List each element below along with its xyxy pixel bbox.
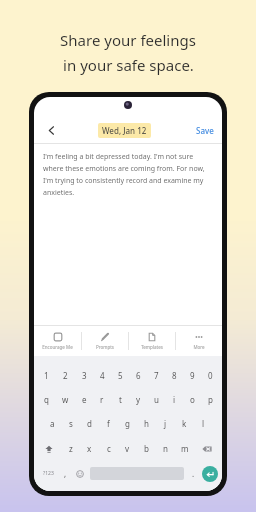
button[interactable]: 1 (37, 363, 56, 387)
button[interactable]: y (129, 387, 147, 411)
staticText: 7 (154, 370, 159, 381)
staticText: a (50, 418, 55, 429)
button[interactable]: p (201, 387, 219, 411)
staticText: r (100, 394, 104, 405)
button[interactable]: . (186, 461, 200, 486)
button[interactable]: 6 (129, 363, 147, 387)
staticText: More (193, 344, 205, 350)
button[interactable]: b (137, 436, 156, 461)
button[interactable]: x (80, 436, 99, 461)
staticText: 2 (63, 370, 68, 381)
staticText: 5 (118, 370, 123, 381)
button[interactable]: More (176, 326, 222, 356)
button[interactable]: Save (188, 121, 222, 140)
staticText: in your safe space. (63, 55, 194, 75)
button[interactable]: 7 (147, 363, 165, 387)
button[interactable]: r (93, 387, 111, 411)
staticText: b (144, 443, 149, 454)
staticText: g (125, 418, 130, 429)
staticText: q (44, 394, 49, 405)
staticText: t (119, 394, 122, 405)
button[interactable]: l (194, 411, 213, 436)
staticText: z (69, 443, 73, 454)
button[interactable]: w (56, 387, 75, 411)
staticText: j (164, 418, 167, 429)
button[interactable]: v (118, 436, 137, 461)
button[interactable]: Encourage Me (34, 326, 81, 356)
button[interactable]: Templates (129, 326, 175, 356)
staticText: 0 (208, 370, 213, 381)
staticText: , (64, 468, 67, 479)
staticText: x (87, 443, 92, 454)
staticText: 3 (82, 370, 87, 381)
button[interactable]: 5 (111, 363, 129, 387)
button[interactable]: f (99, 411, 118, 436)
button[interactable]: 0 (201, 363, 219, 387)
button[interactable]: , (58, 461, 72, 486)
staticText: 6 (136, 370, 141, 381)
staticText: o (190, 394, 195, 405)
button[interactable]: 2 (56, 363, 75, 387)
button[interactable]: z (61, 436, 80, 461)
staticText: 4 (100, 370, 105, 381)
button[interactable]: Backspace (194, 436, 219, 461)
button[interactable]: Enter (202, 466, 218, 482)
button[interactable]: c (99, 436, 118, 461)
button[interactable]: 4 (93, 363, 111, 387)
staticText: m (181, 443, 189, 454)
staticText: 9 (190, 370, 195, 381)
staticText: u (154, 394, 159, 405)
button[interactable]: ?123 (38, 461, 58, 486)
staticText: l (202, 418, 205, 429)
button[interactable]: Back (40, 119, 62, 141)
staticText: d (87, 418, 92, 429)
button[interactable]: t (111, 387, 129, 411)
staticText: p (208, 394, 213, 405)
button[interactable]: h (137, 411, 156, 436)
button[interactable]: k (175, 411, 194, 436)
staticText: Save (196, 125, 214, 136)
staticText: ?123 (43, 470, 54, 477)
button[interactable]: g (118, 411, 137, 436)
staticText: c (107, 443, 111, 454)
staticText: . (192, 468, 195, 479)
button[interactable]: q (37, 387, 56, 411)
staticText: v (125, 443, 130, 454)
button[interactable]: a (43, 411, 61, 436)
button[interactable]: d (80, 411, 99, 436)
staticText: 8 (172, 370, 177, 381)
staticText: n (163, 443, 168, 454)
button[interactable]: Prompts (82, 326, 128, 356)
staticText: 1 (44, 370, 49, 381)
staticText: y (136, 394, 141, 405)
staticText: Prompts (96, 344, 114, 350)
button[interactable]: e (75, 387, 93, 411)
button[interactable]: Shift (37, 436, 61, 461)
button[interactable]: j (156, 411, 175, 436)
button[interactable]: 3 (75, 363, 93, 387)
button[interactable]: m (175, 436, 194, 461)
staticText: h (144, 418, 149, 429)
button[interactable]: 8 (165, 363, 183, 387)
button[interactable]: u (147, 387, 165, 411)
button[interactable]: 9 (183, 363, 201, 387)
staticText: f (107, 418, 110, 429)
button[interactable]: Wed, Jan 12 (98, 123, 151, 138)
staticText: Wed, Jan 12 (102, 125, 147, 136)
button[interactable]: i (165, 387, 183, 411)
staticText: Share your feelings (60, 30, 196, 50)
staticText: s (69, 418, 73, 429)
button[interactable]: o (183, 387, 201, 411)
staticText: w (62, 394, 69, 405)
staticText: i (173, 394, 176, 405)
staticText: k (182, 418, 187, 429)
staticText: Encourage Me (42, 344, 73, 350)
button[interactable]: s (61, 411, 80, 436)
button[interactable]: n (156, 436, 175, 461)
staticText: Templates (141, 344, 163, 350)
staticText: e (82, 394, 87, 405)
button[interactable]: Emoji (72, 461, 88, 486)
staticText: I'm feeling a bit depressed today. I'm n… (43, 152, 213, 197)
